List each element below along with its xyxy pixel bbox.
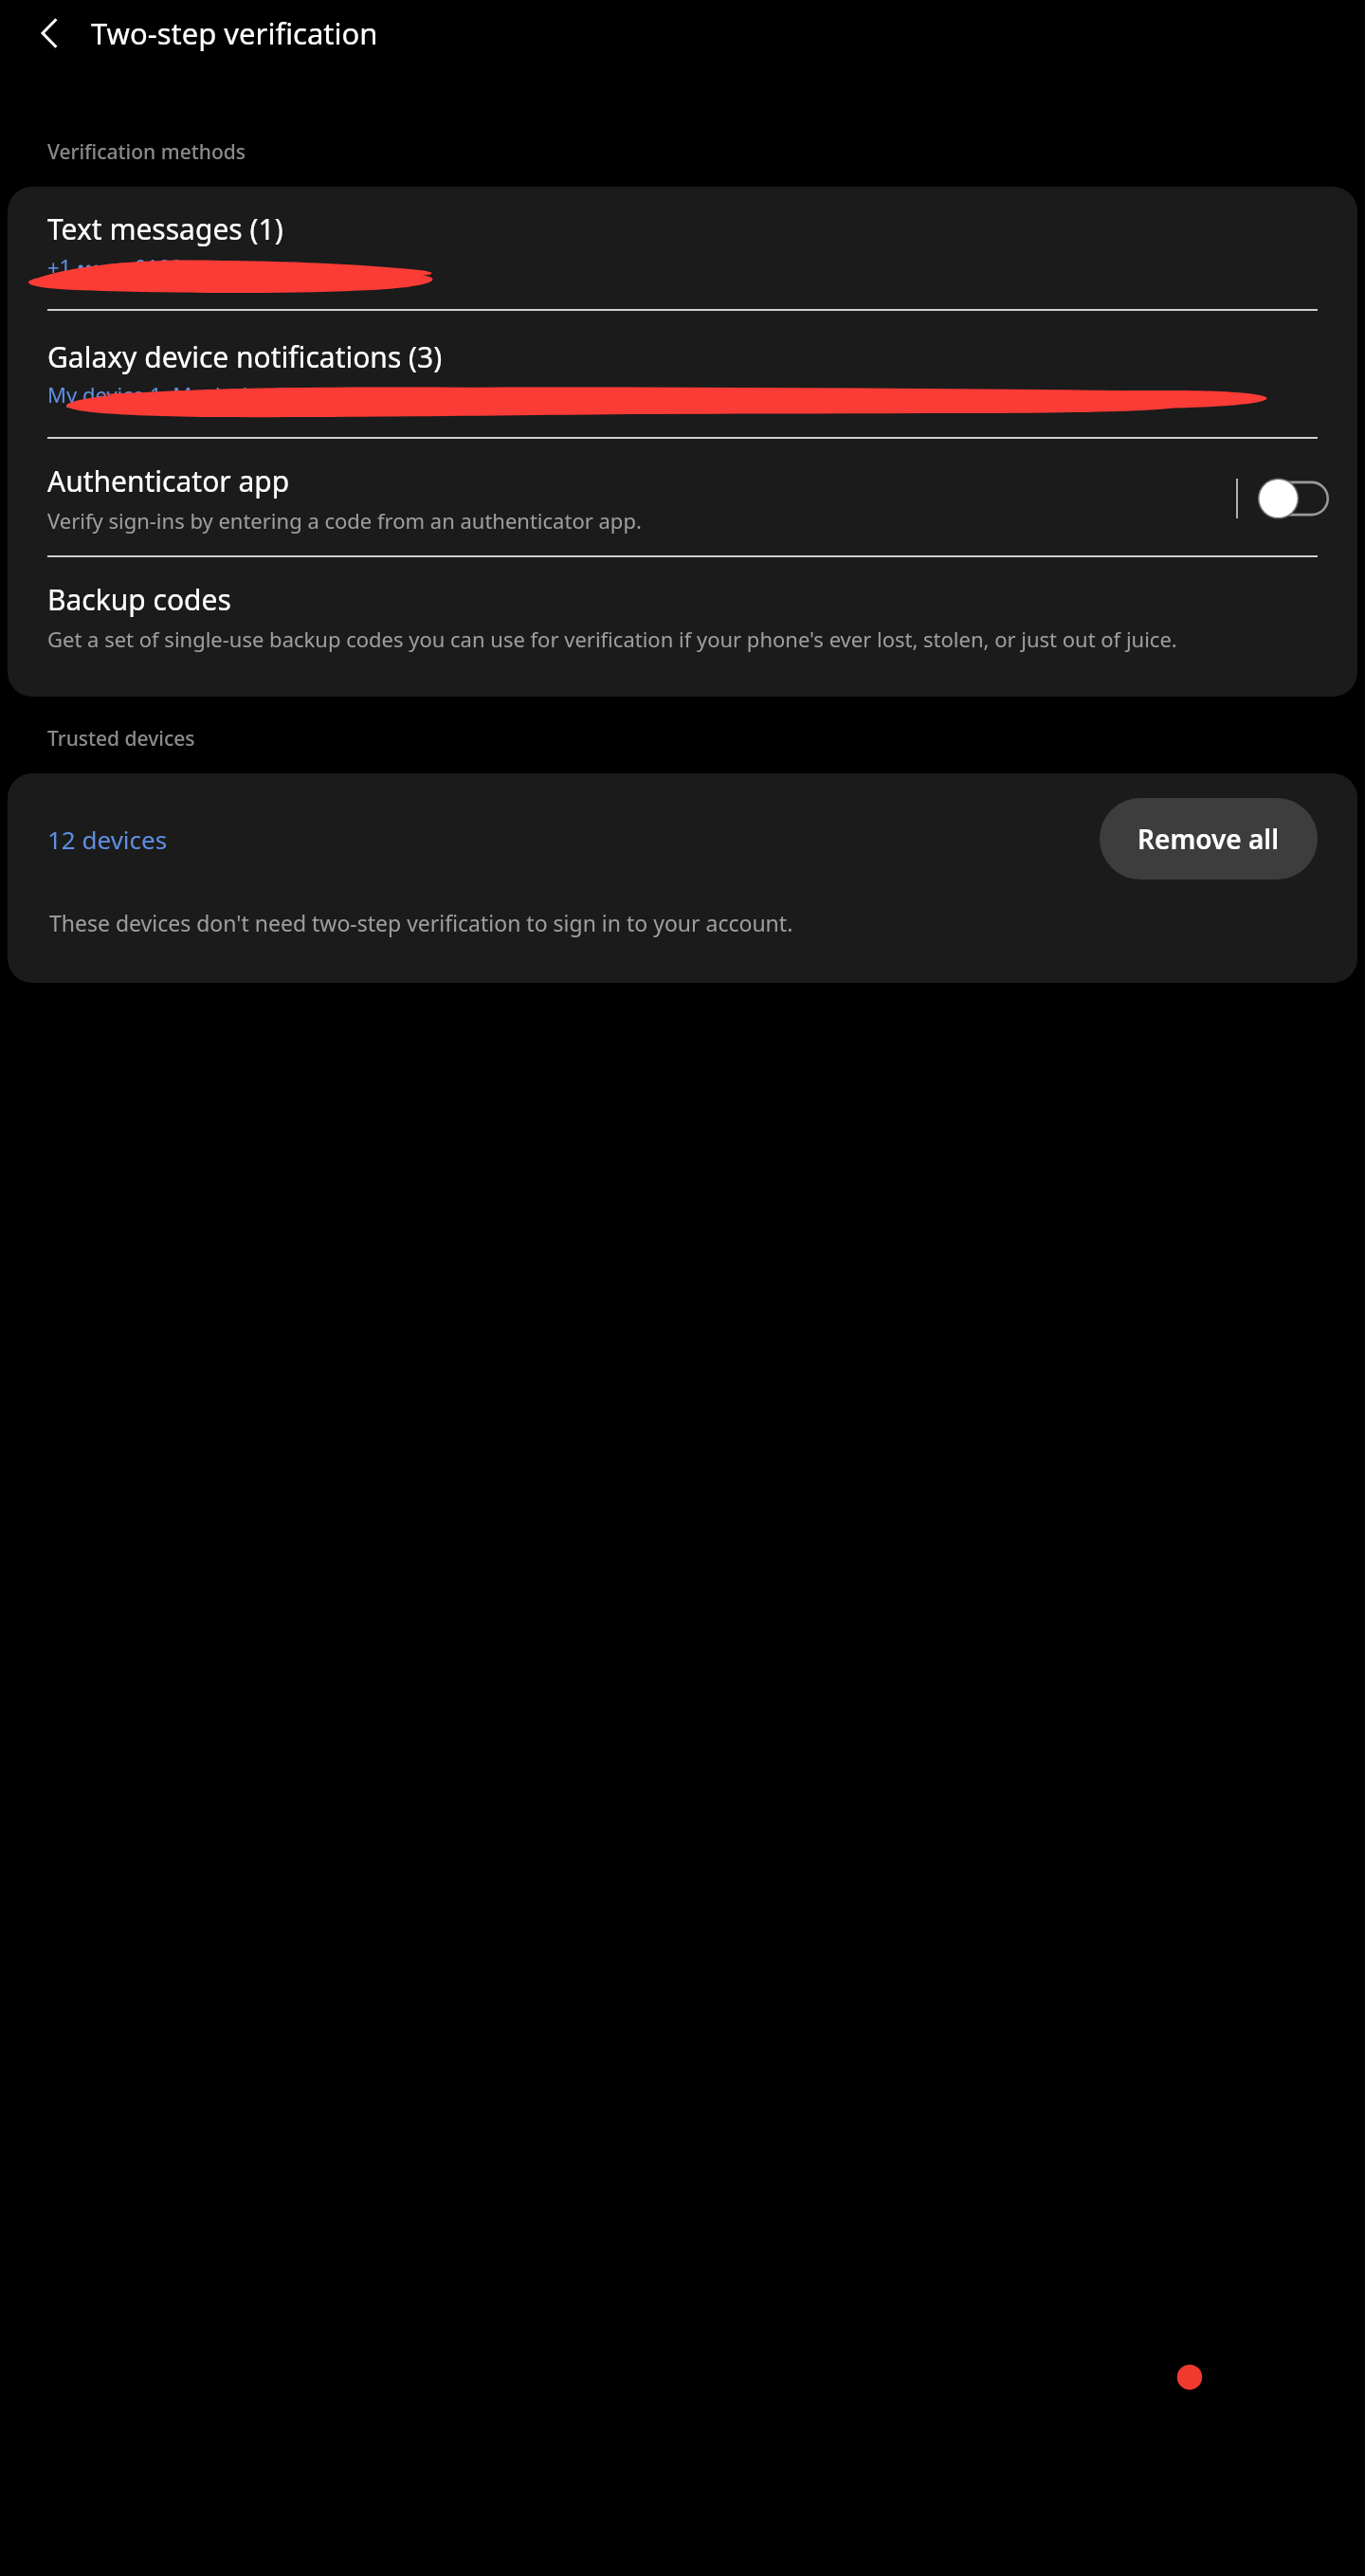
- staticText: My device 1, My device 2, other devices: [47, 380, 429, 408]
- button[interactable]: Backup codes: [8, 557, 1357, 697]
- staticText: These devices don't need two-step verifi…: [49, 908, 793, 937]
- staticText: 12 devices: [47, 823, 168, 856]
- staticText: Backup codes: [47, 580, 231, 619]
- staticText: Verify sign-ins by entering a code from …: [47, 506, 642, 535]
- button[interactable]: 12 devices: [47, 823, 1100, 856]
- button[interactable]: Authenticator app: [8, 439, 1357, 555]
- staticText: Text messages (1): [47, 209, 283, 248]
- button[interactable]: Galaxy device notifications (3): [8, 311, 1357, 437]
- button[interactable]: Back: [21, 4, 80, 63]
- button[interactable]: Remove all: [1100, 798, 1318, 880]
- staticText: Remove all: [1137, 821, 1280, 857]
- staticText: Get a set of single-use backup codes you…: [47, 625, 1177, 653]
- staticText: Authenticator app: [47, 462, 290, 500]
- button[interactable]: Authenticator app toggle: [1257, 477, 1329, 520]
- staticText: +1 ••• ••• 0100: [47, 252, 183, 281]
- staticText: Trusted devices: [47, 725, 195, 753]
- staticText: Verification methods: [47, 138, 246, 166]
- button[interactable]: Text messages (1): [8, 187, 1357, 309]
- staticText: Two-step verification: [91, 13, 378, 53]
- staticText: Galaxy device notifications (3): [47, 337, 443, 376]
